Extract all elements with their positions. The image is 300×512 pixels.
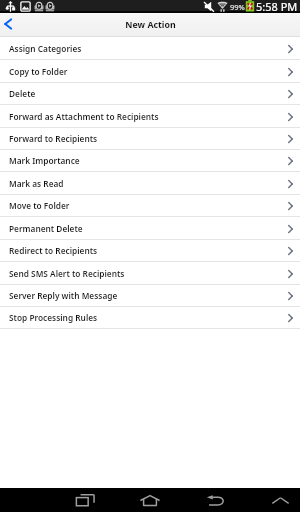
staticText: Redirect to Recipients (9, 245, 98, 256)
button[interactable]: Mark as Read (0, 172, 300, 195)
staticText: Forward as Attachment to Recipients (9, 111, 159, 122)
staticText: Copy to Folder (9, 66, 68, 77)
button[interactable]: Back (0, 13, 20, 37)
staticText: Mark as Read (9, 178, 64, 189)
staticText: Mark Importance (9, 155, 80, 166)
staticText: Forward to Recipients (9, 133, 98, 144)
staticText: 99% (230, 2, 245, 12)
staticText: Move to Folder (9, 200, 70, 211)
button[interactable]: Assign Categories (0, 37, 300, 60)
button[interactable]: Copy to Folder (0, 60, 300, 83)
staticText: Permanent Delete (9, 223, 83, 234)
staticText: Assign Categories (9, 43, 82, 54)
button[interactable]: Server Reply with Message (0, 285, 300, 307)
button[interactable]: Forward to Recipients (0, 128, 300, 150)
button[interactable]: Delete (0, 83, 300, 105)
button[interactable]: Send SMS Alert to Recipients (0, 262, 300, 285)
button[interactable]: Home (126, 488, 174, 512)
staticText: Send SMS Alert to Recipients (9, 268, 125, 279)
button[interactable]: Back (192, 488, 239, 512)
button[interactable]: Forward as Attachment to Recipients (0, 105, 300, 128)
staticText: New Action (125, 19, 176, 31)
button[interactable]: Menu (258, 488, 300, 512)
button[interactable]: Stop Processing Rules (0, 307, 300, 329)
button[interactable]: Recent apps (62, 488, 109, 512)
button[interactable]: Redirect to Recipients (0, 240, 300, 262)
staticText: Server Reply with Message (9, 290, 118, 301)
staticText: 5:58 PM (256, 0, 298, 12)
staticText: Delete (9, 88, 36, 99)
button[interactable]: Move to Folder (0, 195, 300, 217)
button[interactable]: Permanent Delete (0, 217, 300, 240)
button[interactable]: Mark Importance (0, 150, 300, 172)
staticText: Stop Processing Rules (9, 312, 98, 323)
